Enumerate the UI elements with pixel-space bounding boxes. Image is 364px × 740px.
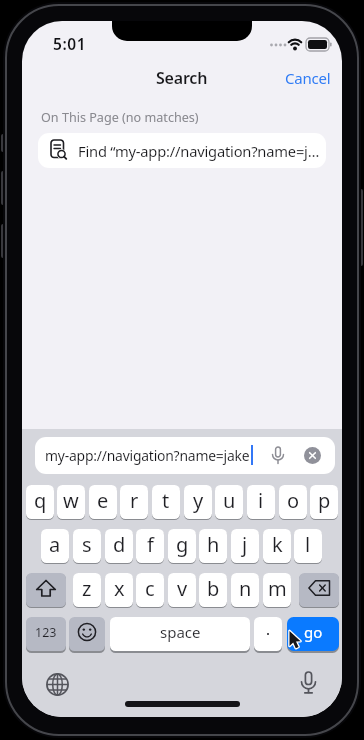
- staticText: Search: [156, 67, 208, 89]
- staticText: 123: [35, 624, 57, 641]
- button[interactable]: 123: [26, 617, 66, 651]
- button[interactable]: go: [287, 617, 339, 651]
- button[interactable]: [26, 573, 66, 607]
- staticText: c: [145, 575, 155, 602]
- button[interactable]: my-app://navigation?name=jake: [35, 437, 335, 474]
- staticText: o: [287, 487, 300, 514]
- button[interactable]: [46, 673, 69, 696]
- button[interactable]: i: [247, 485, 275, 519]
- button[interactable]: r: [120, 485, 148, 519]
- staticText: z: [82, 575, 92, 602]
- staticText: j: [242, 531, 248, 558]
- button[interactable]: g: [168, 529, 196, 563]
- staticText: h: [207, 531, 220, 558]
- staticText: w: [63, 487, 79, 514]
- staticText: d: [113, 531, 126, 558]
- button[interactable]: b: [199, 573, 227, 607]
- staticText: f: [147, 531, 154, 558]
- button[interactable]: [69, 617, 105, 651]
- staticText: go: [304, 622, 323, 642]
- staticText: v: [177, 575, 188, 602]
- button[interactable]: Find “my-app://navigation?name=j…: [38, 133, 326, 168]
- button[interactable]: d: [105, 529, 133, 563]
- staticText: Find “my-app://navigation?name=j…: [78, 141, 320, 161]
- button[interactable]: e: [89, 485, 117, 519]
- button[interactable]: j: [231, 529, 259, 563]
- button[interactable]: n: [231, 573, 259, 607]
- staticText: m: [268, 575, 287, 602]
- button[interactable]: a: [41, 529, 69, 563]
- staticText: Cancel: [285, 68, 331, 88]
- button[interactable]: space: [110, 617, 250, 651]
- staticText: t: [162, 487, 170, 514]
- staticText: s: [82, 531, 92, 558]
- staticText: b: [207, 575, 220, 602]
- button[interactable]: q: [26, 485, 54, 519]
- button[interactable]: m: [263, 573, 291, 607]
- button[interactable]: t: [152, 485, 180, 519]
- staticText: k: [272, 531, 283, 558]
- staticText: g: [176, 531, 189, 558]
- staticText: u: [223, 487, 236, 514]
- button[interactable]: u: [215, 485, 243, 519]
- button[interactable]: w: [57, 485, 85, 519]
- button[interactable]: [304, 447, 321, 464]
- button[interactable]: x: [105, 573, 133, 607]
- staticText: i: [258, 487, 264, 514]
- staticText: On This Page (no matches): [41, 109, 199, 126]
- button[interactable]: z: [73, 573, 101, 607]
- button[interactable]: o: [279, 485, 307, 519]
- staticText: my-app://navigation?name=jake: [45, 446, 250, 465]
- staticText: space: [160, 622, 201, 642]
- button[interactable]: y: [184, 485, 212, 519]
- button[interactable]: k: [263, 529, 291, 563]
- staticText: a: [49, 531, 61, 558]
- staticText: y: [193, 487, 204, 514]
- button[interactable]: Cancel: [285, 68, 331, 88]
- staticText: n: [239, 575, 252, 602]
- staticText: l: [305, 531, 311, 558]
- staticText: q: [34, 487, 47, 514]
- button[interactable]: f: [136, 529, 164, 563]
- button[interactable]: [300, 671, 317, 696]
- button[interactable]: [299, 573, 339, 607]
- staticText: p: [318, 487, 331, 514]
- button[interactable]: h: [199, 529, 227, 563]
- button[interactable]: v: [168, 573, 196, 607]
- button[interactable]: p: [310, 485, 338, 519]
- staticText: r: [130, 487, 139, 514]
- staticText: x: [114, 575, 125, 602]
- staticText: e: [97, 487, 109, 514]
- button[interactable]: c: [136, 573, 164, 607]
- button[interactable]: [254, 617, 282, 651]
- button[interactable]: l: [294, 529, 322, 563]
- button[interactable]: s: [73, 529, 101, 563]
- staticText: 5:01: [53, 33, 87, 54]
